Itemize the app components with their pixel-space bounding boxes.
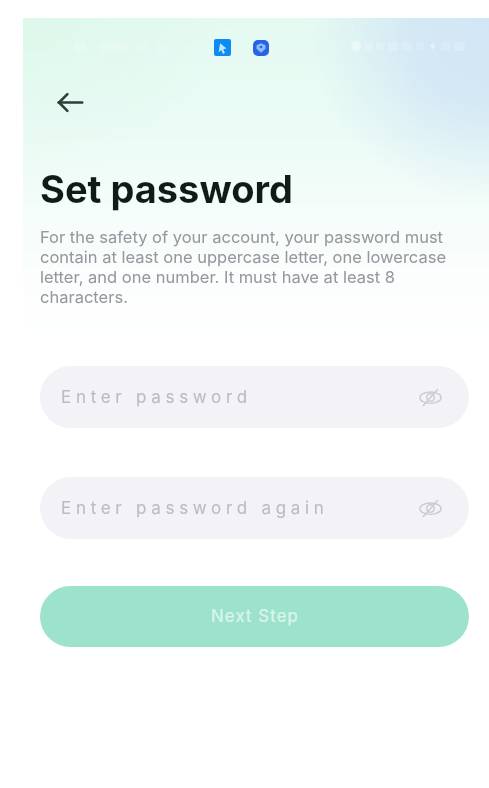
button[interactable]: Next Step xyxy=(40,586,469,647)
button[interactable]: Enter password xyxy=(40,366,469,428)
staticText: Enter password xyxy=(61,387,252,408)
button[interactable]: Back xyxy=(48,80,92,124)
staticText: Next Step xyxy=(211,606,299,627)
button[interactable]: Toggle password visibility xyxy=(416,383,444,411)
staticText: For the safety of your account, your pas… xyxy=(40,227,452,307)
button[interactable]: Enter password again xyxy=(40,477,469,539)
button[interactable]: Toggle password visibility xyxy=(416,494,444,522)
staticText: Enter password again xyxy=(61,498,329,519)
staticText: Set password xyxy=(40,166,293,212)
